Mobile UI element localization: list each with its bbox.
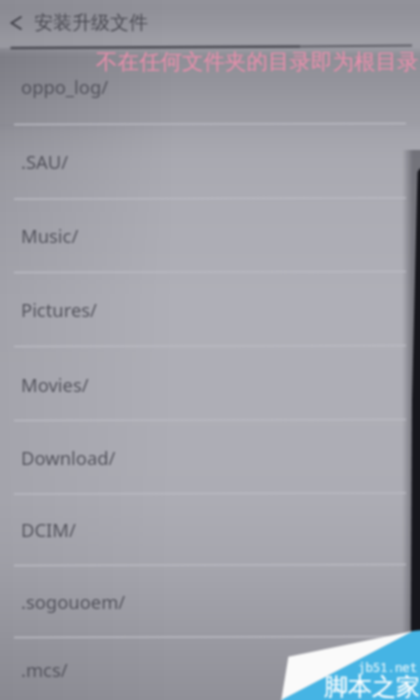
button[interactable]: Music/ <box>0 199 420 271</box>
staticText: .SAU/ <box>21 149 69 174</box>
staticText: .sogouoem/ <box>21 589 126 614</box>
staticText: 安装升级文件 <box>34 11 148 35</box>
button[interactable]: .SAU/ <box>0 125 420 197</box>
staticText: .mcs/ <box>21 657 68 682</box>
button[interactable]: Back <box>0 0 34 47</box>
staticText: 脚本之家 <box>324 672 420 700</box>
button[interactable]: .mcs/ <box>0 633 420 700</box>
staticText: jb51.net <box>358 659 418 676</box>
button[interactable]: DCIM/ <box>0 493 420 565</box>
staticText: Download/ <box>21 445 116 470</box>
button[interactable]: Pictures/ <box>0 273 420 345</box>
staticText: Pictures/ <box>21 297 97 322</box>
staticText: Movies/ <box>21 372 89 397</box>
button[interactable]: Movies/ <box>0 348 420 420</box>
staticText: oppo_log/ <box>21 74 109 99</box>
staticText: DCIM/ <box>21 517 76 542</box>
button[interactable]: .sogouoem/ <box>0 565 420 637</box>
staticText: Music/ <box>21 223 79 248</box>
button[interactable]: oppo_log/ <box>0 50 420 122</box>
button[interactable]: Download/ <box>0 421 420 493</box>
staticText: 不在任何文件夹的目录即为根目录 <box>96 48 419 75</box>
